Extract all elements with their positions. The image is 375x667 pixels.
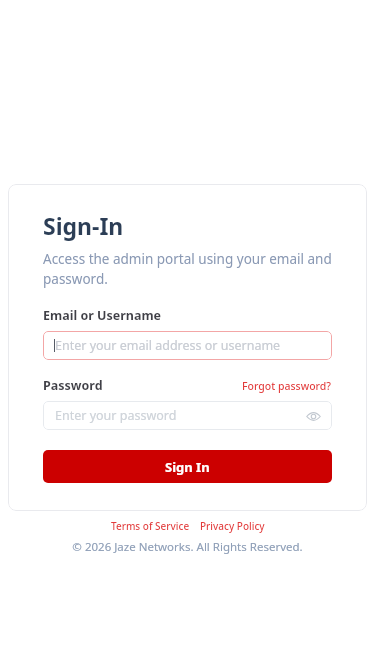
staticText: Forgot password?: [242, 379, 332, 393]
staticText: Password: [43, 377, 103, 394]
button[interactable]: Enter your email address or username: [43, 331, 332, 360]
button[interactable]: Terms of Service: [111, 519, 190, 533]
staticText: Email or Username: [43, 307, 162, 324]
staticText: Access the admin portal using your email…: [43, 250, 332, 288]
button[interactable]: Show password: [304, 407, 322, 425]
staticText: Enter your email address or username: [55, 337, 281, 354]
staticText: Terms of Service: [111, 519, 190, 533]
staticText: Privacy Policy: [200, 519, 265, 533]
button[interactable]: Sign In: [43, 450, 332, 483]
staticText: Sign In: [165, 458, 210, 476]
button[interactable]: Enter your password: [43, 401, 332, 430]
staticText: Enter your password: [55, 407, 177, 424]
button[interactable]: Forgot password?: [242, 379, 332, 393]
staticText: © 2026 Jaze Networks. All Rights Reserve…: [0, 539, 375, 555]
button[interactable]: Privacy Policy: [200, 519, 265, 533]
staticText: Sign-In: [43, 210, 124, 241]
